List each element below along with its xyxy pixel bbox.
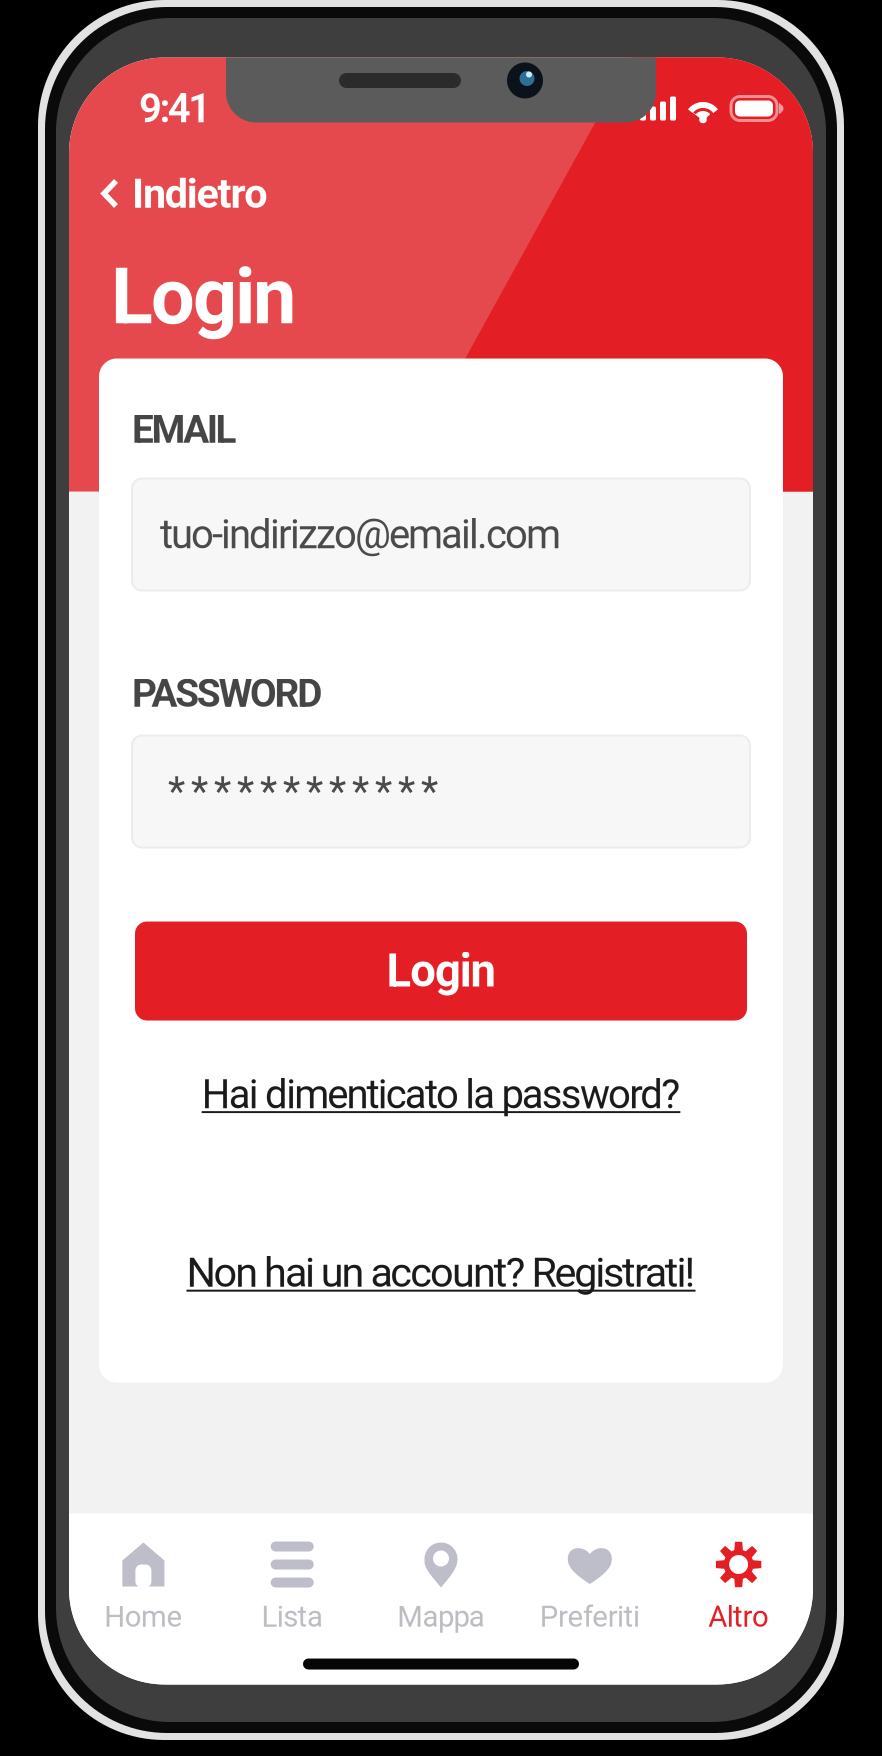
button[interactable]: Mappa [367,1508,515,1650]
button[interactable]: Lista [218,1508,367,1650]
staticText: Lista [261,1599,323,1634]
staticText: Login [386,944,496,997]
staticText: Home [104,1599,182,1634]
staticText: Indietro [132,169,267,218]
staticText: Altro [708,1599,769,1634]
staticText: * * * * * * * * * * * * [168,768,438,815]
staticText: Mappa [397,1599,485,1634]
button[interactable]: Login [132,921,750,1020]
staticText: Hai dimenticato la password? [202,1071,680,1118]
button[interactable]: Home [69,1508,218,1650]
staticText: EMAIL [132,407,236,452]
button[interactable]: Hai dimenticato la password? [132,1063,750,1125]
staticText: Preferiti [540,1599,640,1634]
staticText: tuo-indirizzo@email.com [160,511,561,558]
staticText: PASSWORD [132,671,322,716]
button[interactable]: Preferiti [515,1508,664,1650]
staticText: 9:41 [139,85,211,132]
staticText: Non hai un account? Registrati! [186,1248,695,1297]
staticText: Login [111,251,296,342]
button[interactable]: Non hai un account? Registrati! [132,1239,750,1305]
button[interactable]: Indietro [69,171,287,215]
button[interactable]: Altro [664,1508,813,1650]
